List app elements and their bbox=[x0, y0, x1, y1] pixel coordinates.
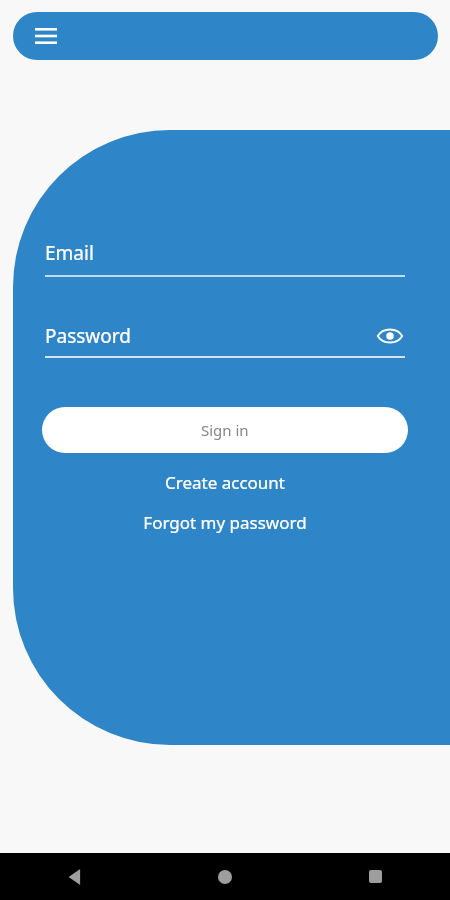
button[interactable]: Recent apps bbox=[300, 853, 450, 900]
button[interactable]: Sign in bbox=[42, 407, 408, 453]
button[interactable]: Open navigation menu bbox=[29, 19, 63, 53]
button[interactable]: Open navigation menu bbox=[13, 12, 438, 60]
staticText: Forgot my password bbox=[143, 511, 307, 534]
button[interactable]: Back bbox=[0, 853, 150, 900]
staticText: Email bbox=[45, 240, 94, 266]
button[interactable]: Home bbox=[150, 853, 300, 900]
button[interactable]: Forgot my password bbox=[0, 511, 450, 534]
staticText: Password bbox=[45, 323, 131, 349]
button[interactable]: Password bbox=[45, 321, 405, 358]
button[interactable]: Email bbox=[45, 240, 405, 277]
button[interactable]: Show password bbox=[375, 321, 405, 351]
button[interactable]: Create account bbox=[0, 471, 450, 494]
staticText: Sign in bbox=[201, 420, 249, 440]
staticText: Create account bbox=[165, 471, 285, 494]
